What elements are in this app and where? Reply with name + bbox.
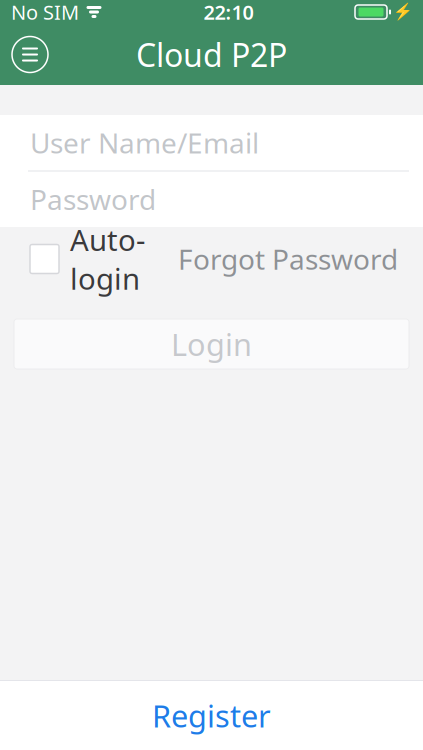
button[interactable]: Auto-login xyxy=(0,208,145,310)
button[interactable]: Login xyxy=(14,319,409,369)
staticText: No SIM xyxy=(11,0,79,25)
staticText: Login xyxy=(171,324,252,364)
staticText: 22:10 xyxy=(203,0,253,25)
button[interactable]: Register xyxy=(0,681,423,750)
staticText: Forgot Password xyxy=(178,240,398,278)
staticText: Password xyxy=(30,181,156,218)
staticText: Cloud P2P xyxy=(136,33,287,76)
button[interactable]: Forgot Password xyxy=(178,228,423,290)
staticText: ⚡ xyxy=(393,3,413,21)
button[interactable]: Menu xyxy=(0,29,60,79)
staticText: Register xyxy=(152,695,271,736)
staticText: Auto-login xyxy=(70,220,145,298)
staticText: User Name/Email xyxy=(30,124,259,161)
